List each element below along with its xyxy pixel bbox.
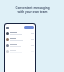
button[interactable] [6,30,34,36]
button[interactable] [6,42,34,48]
button[interactable] [6,36,34,42]
staticText: with your own team [17,10,48,14]
button[interactable] [6,48,34,54]
staticText: Convenient messaging [15,6,50,10]
button[interactable] [24,26,34,29]
